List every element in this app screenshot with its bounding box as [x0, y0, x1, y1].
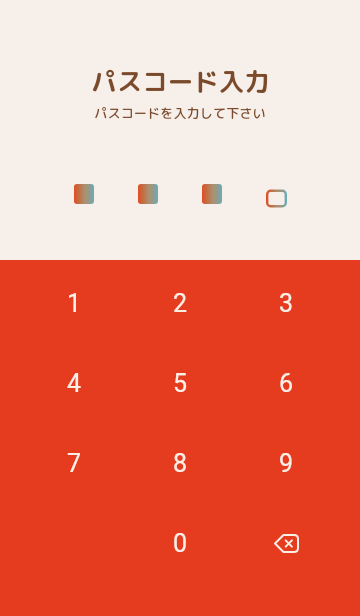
- button[interactable]: 6: [233, 343, 339, 423]
- staticText: 7: [67, 449, 82, 478]
- button[interactable]: 2: [127, 263, 233, 343]
- button[interactable]: Delete: [233, 503, 339, 583]
- staticText: 9: [279, 449, 294, 478]
- button[interactable]: 8: [127, 423, 233, 503]
- staticText: 1: [67, 289, 82, 318]
- staticText: パスコードを入力して下さい: [94, 104, 266, 122]
- staticText: 0: [173, 529, 188, 558]
- button[interactable]: 0: [127, 503, 233, 583]
- staticText: 8: [173, 449, 188, 478]
- button[interactable]: 9: [233, 423, 339, 503]
- staticText: パスコード入力: [91, 64, 270, 100]
- button[interactable]: 7: [21, 423, 127, 503]
- staticText: 5: [173, 369, 188, 398]
- button[interactable]: 1: [21, 263, 127, 343]
- button[interactable]: 3: [233, 263, 339, 343]
- button[interactable]: 4: [21, 343, 127, 423]
- staticText: 2: [173, 289, 188, 318]
- staticText: 4: [67, 369, 82, 398]
- staticText: 6: [279, 369, 294, 398]
- button[interactable]: 5: [127, 343, 233, 423]
- staticText: 3: [279, 289, 294, 318]
